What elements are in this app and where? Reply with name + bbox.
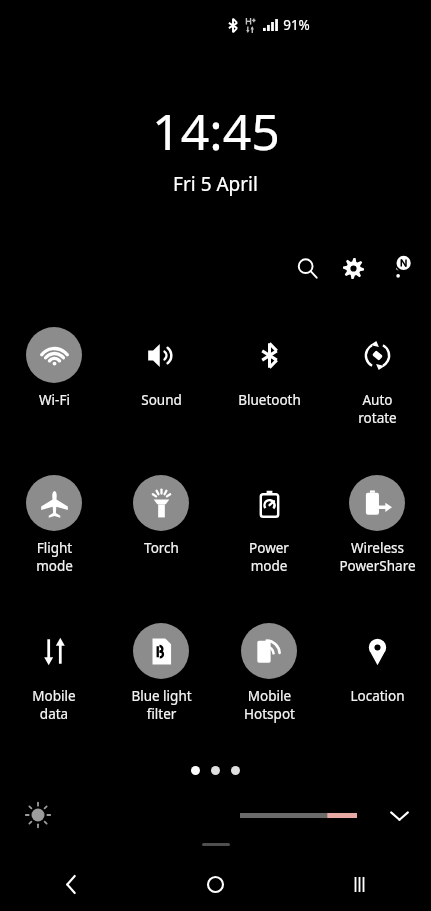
button[interactable]: Location [327,623,427,705]
button[interactable]: Torch [111,475,211,557]
button[interactable]: Mobile data [4,623,104,723]
button[interactable]: Bluetooth [219,327,319,409]
button[interactable]: Back [0,857,143,911]
staticText: Fri 5 April [173,171,258,197]
staticText: Sound [141,391,182,409]
staticText: Auto rotate [358,391,397,427]
staticText: Power mode [249,539,289,575]
staticText: Location [350,687,405,705]
button[interactable]: Wireless PowerShare [327,475,427,575]
button[interactable]: Brightness slider [240,804,357,826]
button[interactable]: Blue light filter [111,623,211,723]
button[interactable]: Search [287,248,327,288]
staticText: Torch [144,539,179,557]
button[interactable]: More options [379,248,419,288]
staticText: 91% [283,16,310,34]
button[interactable]: Home [143,857,287,911]
staticText: Flight mode [36,539,73,575]
staticText: Mobile Hotspot [244,687,295,723]
button[interactable]: Recent apps [287,857,431,911]
button[interactable]: Settings [333,248,373,288]
button[interactable]: Wi-Fi [4,327,104,409]
button[interactable]: Power mode [219,475,319,575]
staticText: Blue light filter [131,687,192,723]
button[interactable]: Sound [111,327,211,409]
staticText: Wi-Fi [39,391,70,409]
button[interactable]: Brightness [17,794,59,836]
button[interactable]: Mobile Hotspot [219,623,319,723]
staticText: Mobile data [32,687,76,723]
button[interactable]: Expand quick settings [379,795,419,835]
staticText: Bluetooth [238,391,301,409]
button[interactable]: Flight mode [4,475,104,575]
button[interactable]: Auto rotate [327,327,427,427]
staticText: 14:45 [152,97,280,165]
staticText: Wireless PowerShare [339,539,416,575]
